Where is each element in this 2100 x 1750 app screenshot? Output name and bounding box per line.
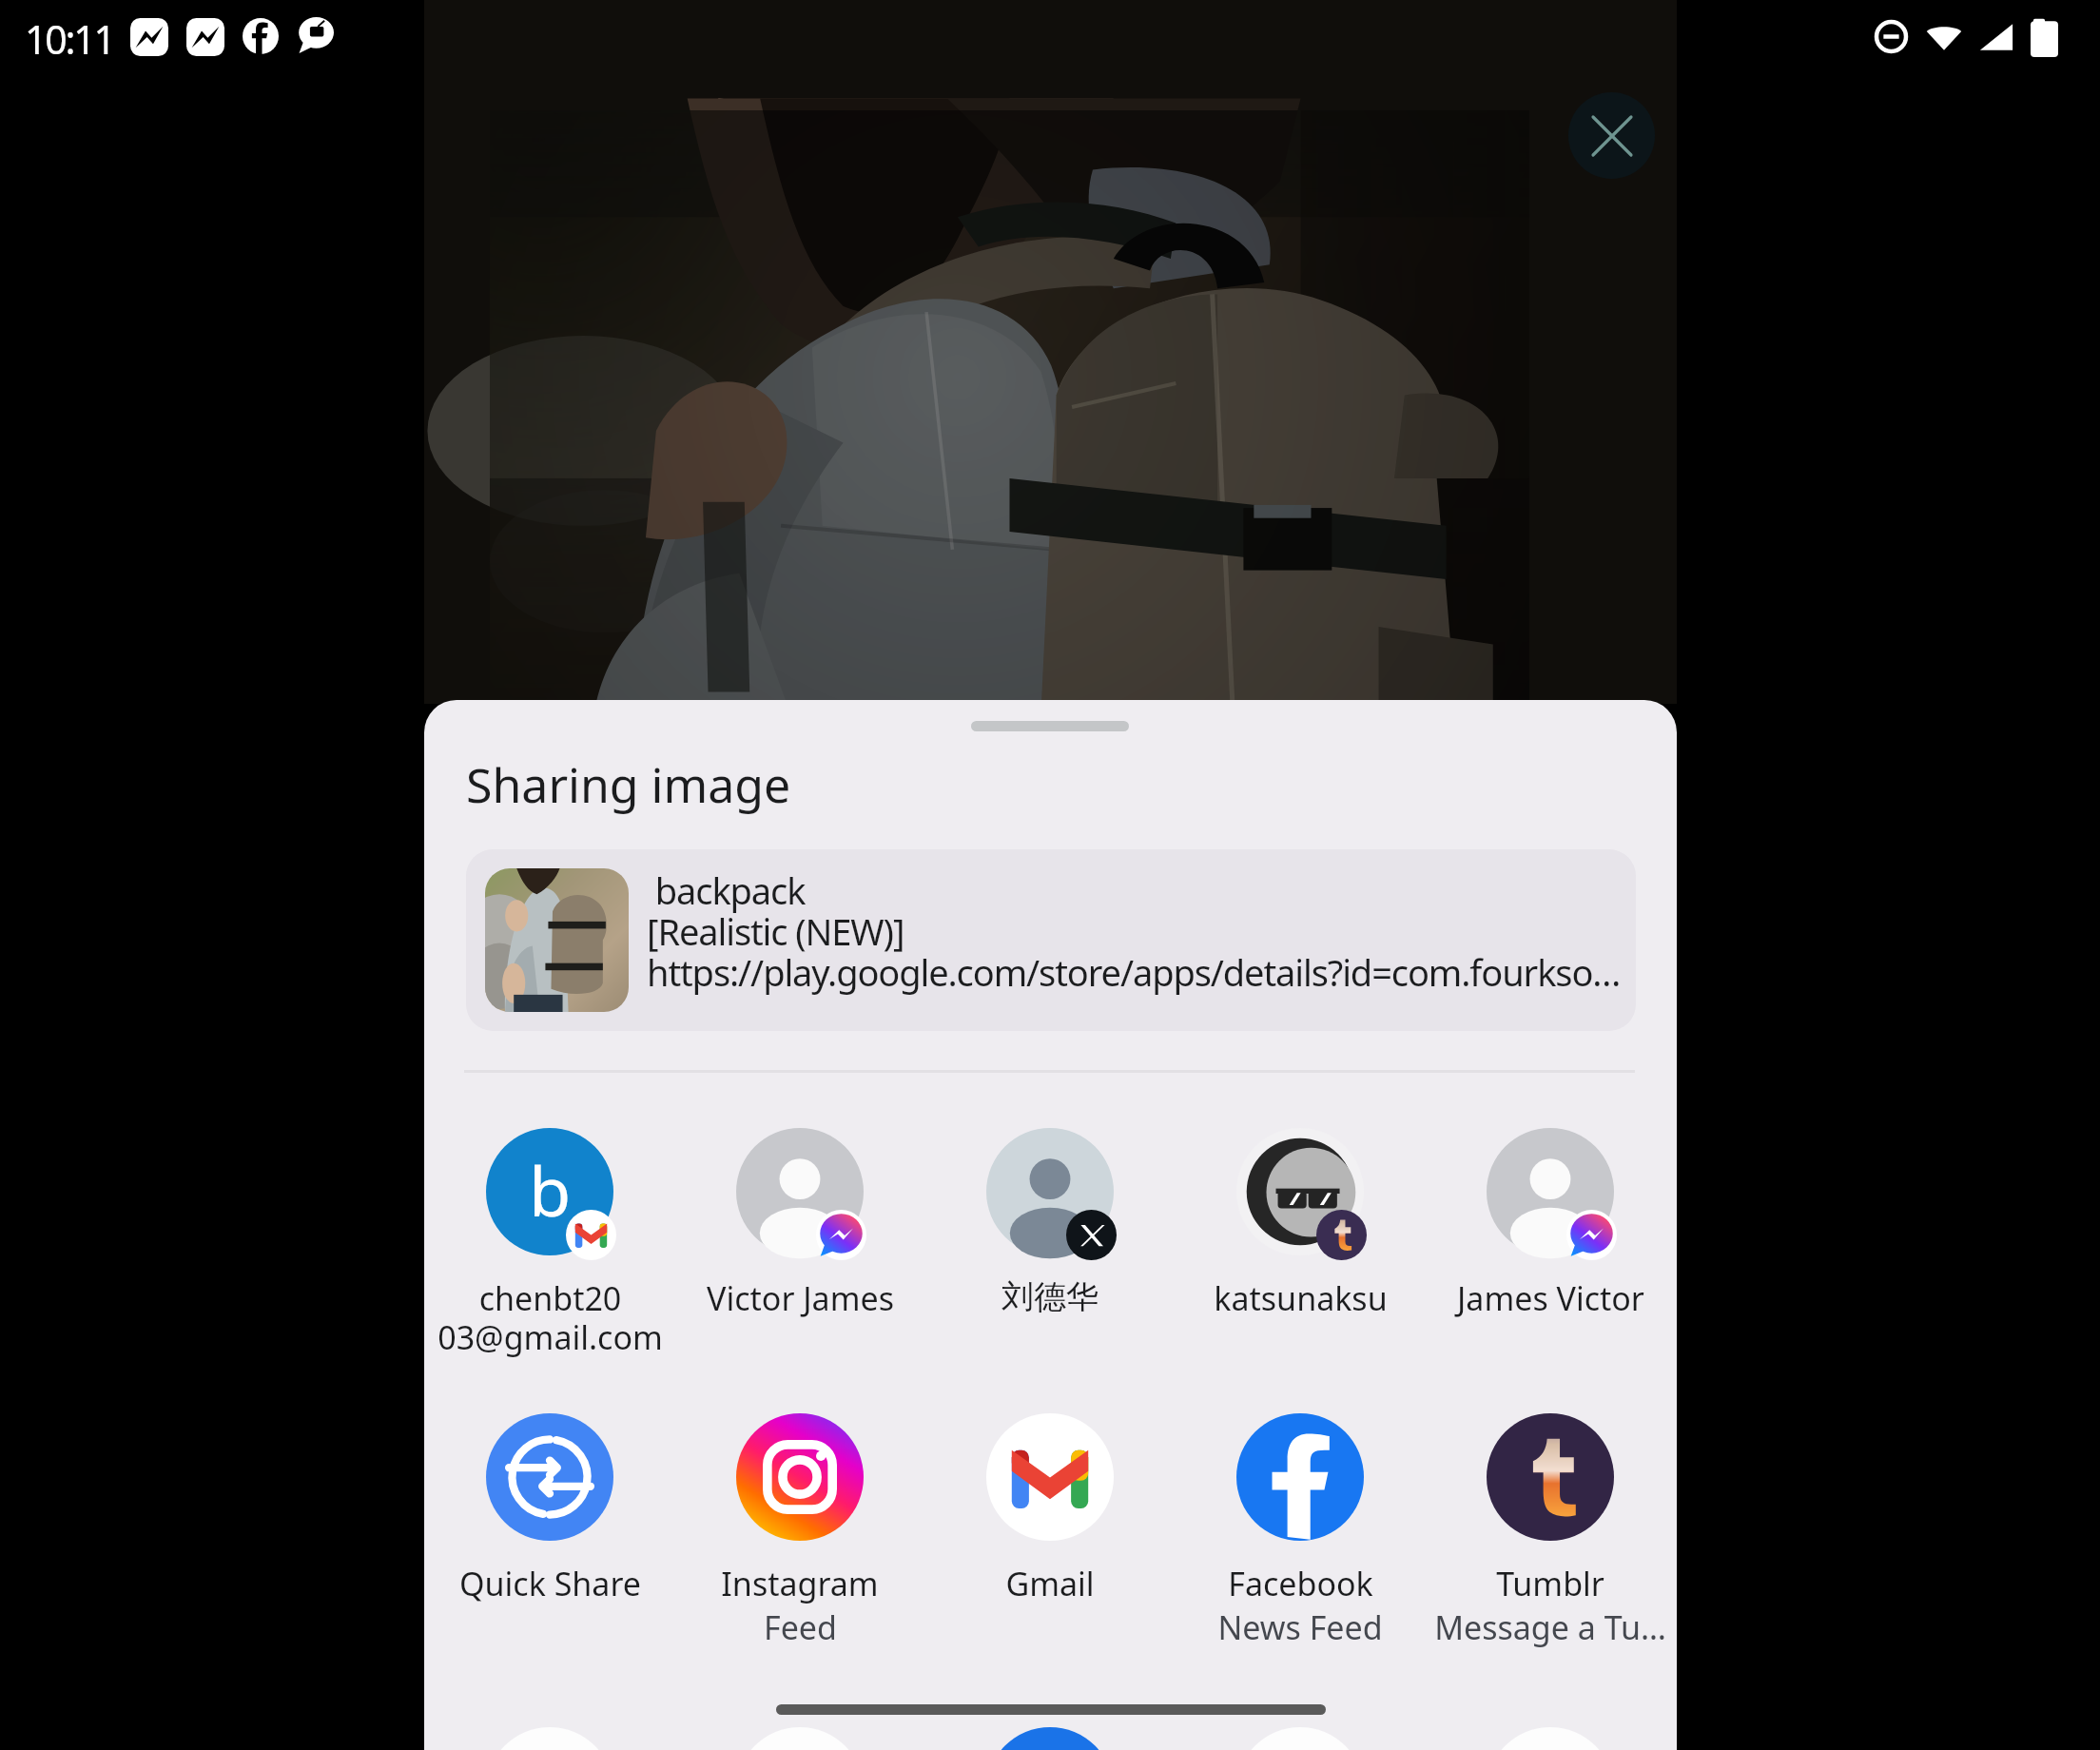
button[interactable]: More share target 1 <box>486 1727 613 1750</box>
staticText: chenbt20 03@gmail.com <box>437 1276 663 1359</box>
staticText: katsunaksu <box>1214 1276 1388 1320</box>
button[interactable]: Quick Share <box>425 1396 674 1605</box>
button[interactable]: James Victor <box>1426 1111 1675 1320</box>
staticText: Tumblr <box>1496 1562 1604 1605</box>
button[interactable]: More share target 2 <box>736 1727 864 1750</box>
staticText: Quick Share <box>459 1562 641 1605</box>
button[interactable]: Close <box>1568 92 1655 179</box>
button[interactable]: More share target 4 <box>1236 1727 1364 1750</box>
staticText: 10:11 <box>25 12 114 66</box>
button[interactable]: Instagram <box>675 1396 924 1649</box>
staticText: backpack [Realistic (NEW)] https://play.… <box>647 865 1636 997</box>
staticText: Victor James <box>707 1276 894 1320</box>
button[interactable]: b <box>425 1111 674 1359</box>
button[interactable]: Gmail <box>925 1396 1175 1605</box>
button[interactable]: More share target 3 <box>986 1727 1114 1750</box>
staticText: Facebook <box>1228 1562 1373 1605</box>
button[interactable]: backpack [Realistic (NEW)] https://play.… <box>466 849 1636 1031</box>
staticText: Sharing image <box>466 752 791 817</box>
button[interactable]: Victor James <box>675 1111 924 1320</box>
staticText: Gmail <box>1005 1562 1095 1605</box>
staticText: 刘德华 <box>1001 1276 1099 1317</box>
staticText: News Feed <box>1217 1605 1383 1649</box>
button[interactable]: Facebook <box>1176 1396 1425 1649</box>
staticText: James Victor <box>1457 1276 1644 1320</box>
staticText: Message a Tu… <box>1434 1605 1666 1649</box>
button[interactable]: Drag handle <box>971 721 1129 731</box>
button[interactable]: Tumblr <box>1426 1396 1675 1649</box>
button[interactable]: katsunaksu <box>1176 1111 1425 1320</box>
staticText: b <box>529 1143 572 1236</box>
staticText: Feed <box>764 1605 837 1649</box>
staticText: Instagram <box>721 1562 879 1605</box>
button[interactable]: More share target 5 <box>1487 1727 1614 1750</box>
button[interactable]: 刘德华 <box>925 1111 1175 1317</box>
